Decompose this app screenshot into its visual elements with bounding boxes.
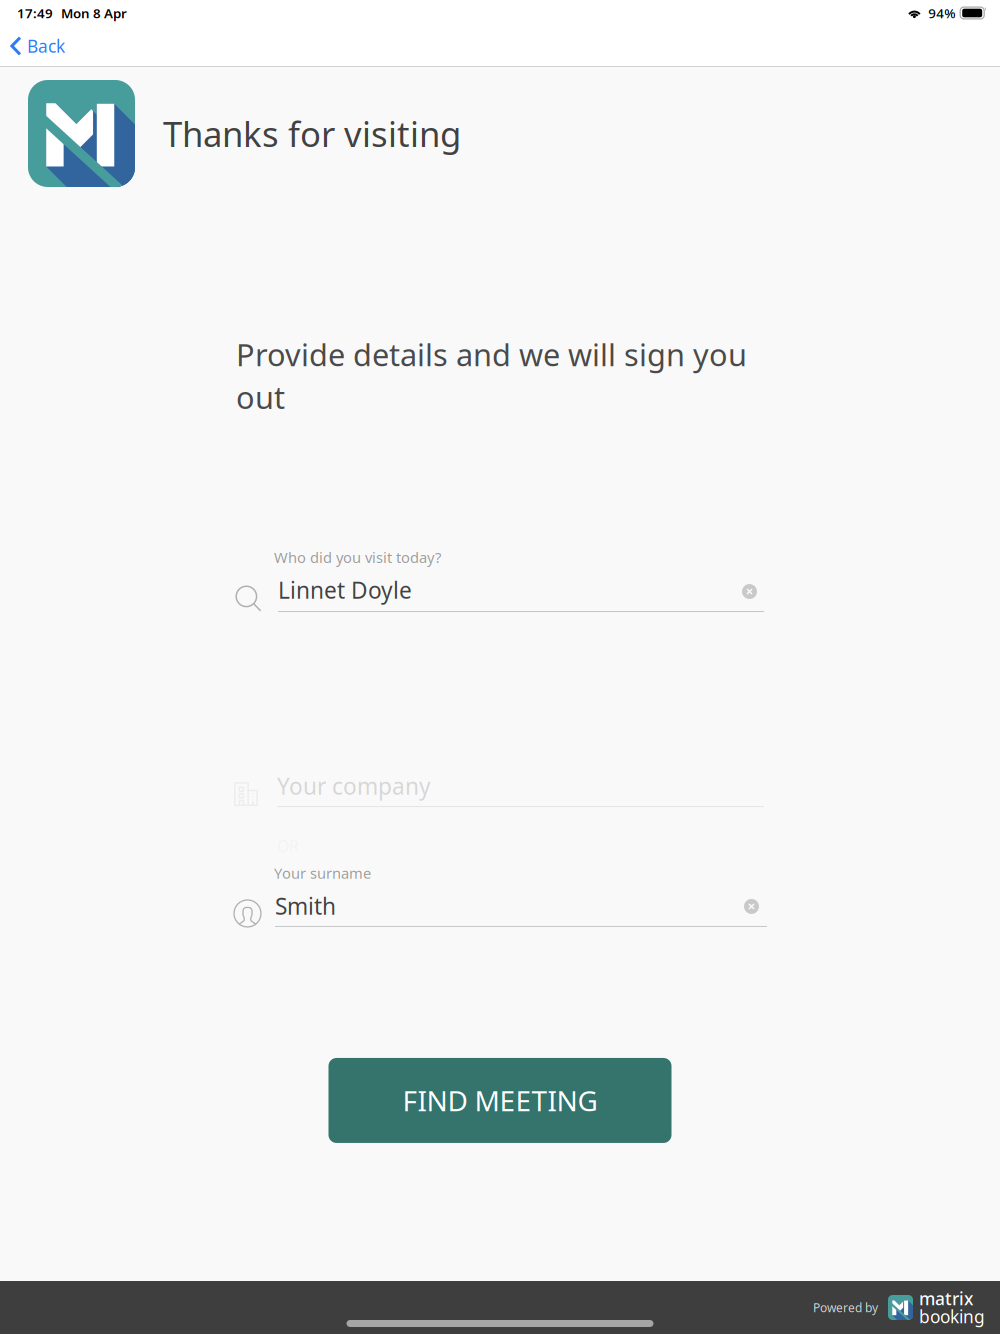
staticText: 17:49 xyxy=(17,4,53,22)
staticText: Who did you visit today? xyxy=(274,547,441,567)
staticText: Your surname xyxy=(274,863,371,883)
staticText: 94% xyxy=(928,4,955,22)
staticText: FIND MEETING xyxy=(402,1082,597,1119)
staticText: Back xyxy=(27,34,65,57)
staticText: Smith xyxy=(275,891,336,921)
staticText: Linnet Doyle xyxy=(278,575,412,605)
button[interactable]: FIND MEETING xyxy=(328,1058,671,1143)
staticText: Your company xyxy=(277,771,431,801)
staticText: Thanks for visiting xyxy=(163,110,461,156)
staticText: Powered by xyxy=(813,1299,878,1315)
staticText: out xyxy=(236,377,285,417)
staticText: Provide details and we will sign you xyxy=(236,334,747,375)
button[interactable]: Back xyxy=(0,25,79,66)
staticText: matrix xyxy=(919,1287,973,1310)
staticText: booking xyxy=(919,1305,985,1328)
staticText: Mon 8 Apr xyxy=(61,4,127,22)
